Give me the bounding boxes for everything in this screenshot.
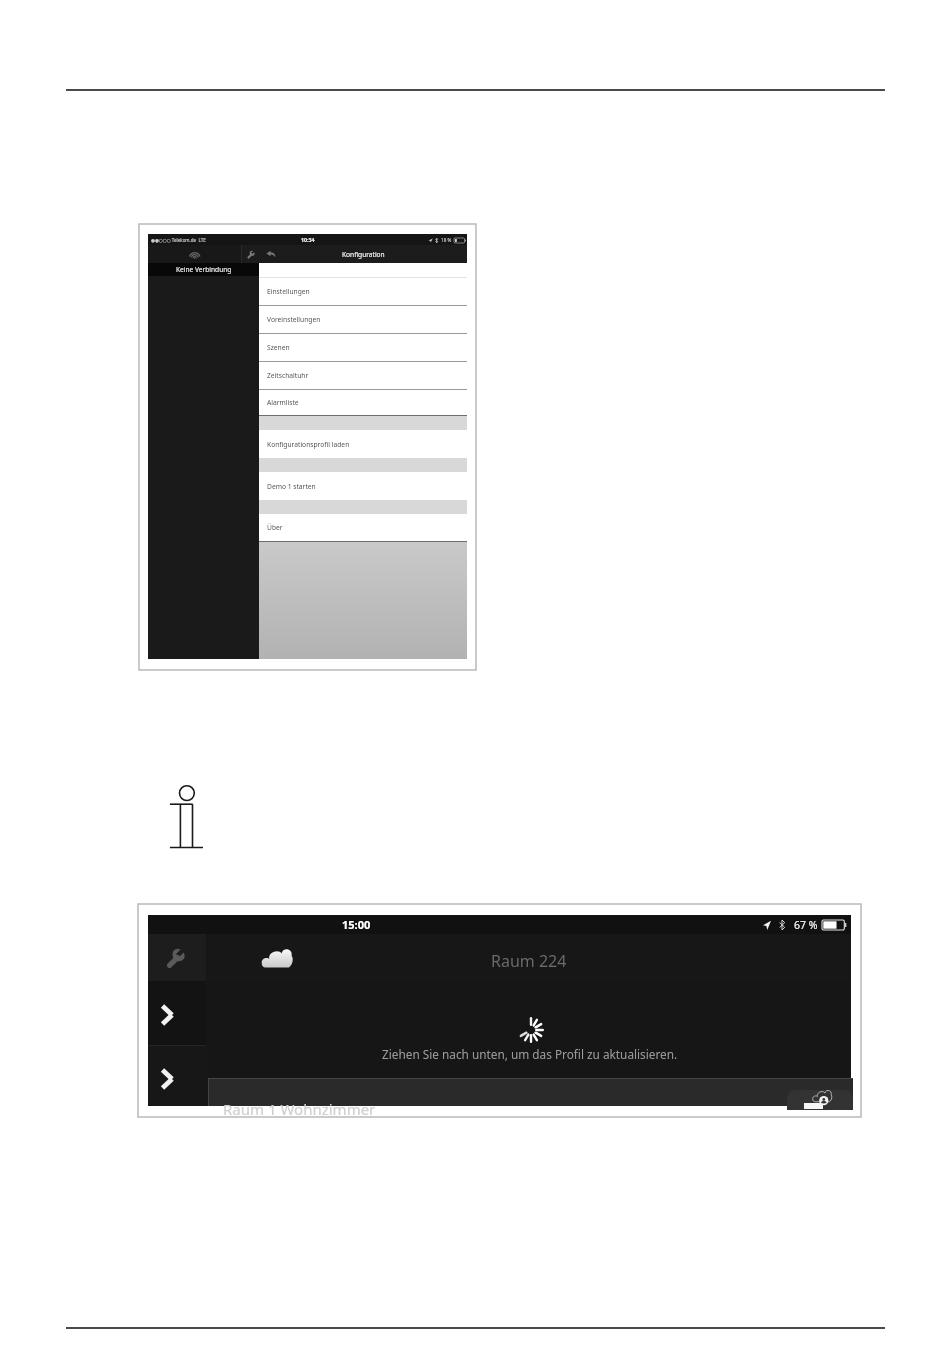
button[interactable]: Szenen (259, 334, 467, 361)
button[interactable]: WLAN (148, 245, 241, 263)
button[interactable]: Cloud (787, 1090, 853, 1110)
button[interactable]: Zeitschaltuhr (259, 362, 467, 389)
button[interactable]: Alarmliste (259, 390, 467, 415)
button[interactable]: Einstellungen (148, 934, 206, 981)
button[interactable]: Einstellungen (242, 245, 260, 263)
staticText: 18 % (441, 237, 452, 243)
button[interactable]: Voreinstellungen (259, 306, 467, 333)
button[interactable]: Über (259, 514, 467, 541)
button[interactable]: Zurück (260, 245, 281, 263)
staticText: ●●○○○ Telekom.de LTE (151, 237, 206, 243)
staticText: Einstellungen (267, 287, 310, 296)
button[interactable]: Weiter (148, 981, 206, 1045)
staticText: Raum 1 Wohnzimmer (223, 1099, 376, 1119)
staticText: Szenen (267, 343, 290, 352)
button[interactable]: Konfigurationsprofil laden (259, 430, 467, 458)
button[interactable]: Demo 1 starten (259, 472, 467, 500)
staticText: Ziehen Sie nach unten, um das Profil zu … (382, 1046, 678, 1062)
staticText: Voreinstellungen (267, 315, 321, 324)
staticText: Demo 1 starten (267, 482, 316, 491)
button[interactable]: Wetter (259, 947, 293, 969)
staticText: Konfiguration (342, 250, 385, 259)
staticText: Raum 224 (491, 950, 567, 972)
button[interactable]: Einstellungen (259, 278, 467, 305)
staticText: Keine Verbindung (176, 265, 232, 274)
staticText: 15:00 (342, 917, 371, 932)
staticText: Über (267, 523, 283, 532)
staticText: Alarmliste (267, 398, 299, 407)
staticText: 10:34 (301, 236, 315, 243)
staticText: Konfigurationsprofil laden (267, 440, 350, 449)
staticText: Zeitschaltuhr (267, 371, 309, 380)
staticText: 67 % (794, 918, 818, 932)
button[interactable]: Weiter (148, 1046, 206, 1106)
